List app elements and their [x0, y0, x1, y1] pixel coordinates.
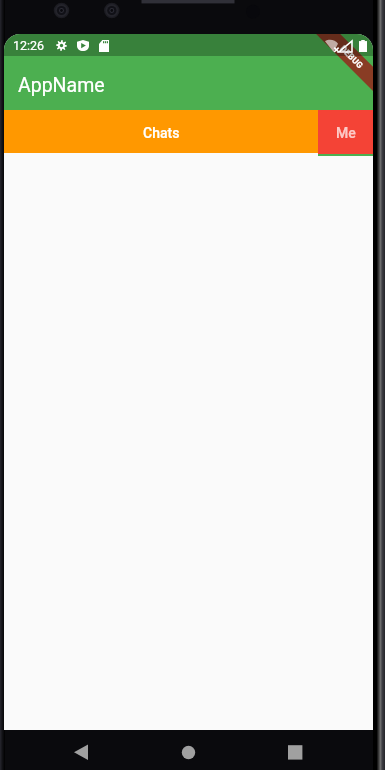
button[interactable]: Chats	[4, 110, 318, 153]
button[interactable]: Home	[168, 730, 208, 770]
button[interactable]: Me	[318, 110, 373, 154]
staticText: Chats	[143, 125, 180, 141]
staticText: AppName	[18, 74, 105, 97]
staticText: Me	[336, 125, 356, 141]
button[interactable]: Recent apps	[275, 730, 315, 770]
staticText: 12:26	[13, 38, 45, 53]
button[interactable]: Back	[61, 730, 101, 770]
staticText: DEBUG	[338, 43, 366, 71]
